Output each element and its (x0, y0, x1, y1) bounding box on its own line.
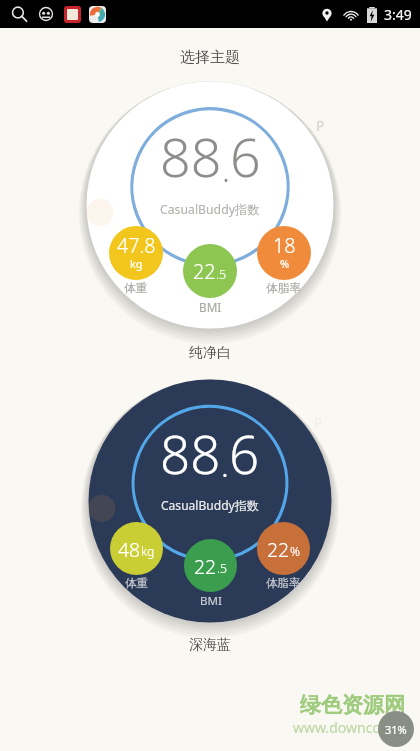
staticText: . (221, 443, 229, 487)
staticText: 22 (194, 553, 217, 579)
staticText: 3:49 (384, 5, 412, 24)
button[interactable]: 18 (257, 226, 311, 280)
staticText: 体重 (125, 576, 149, 591)
staticText: . (222, 147, 230, 191)
button[interactable]: 22 (184, 539, 237, 592)
staticText: 6 (229, 417, 260, 489)
staticText: % (280, 256, 290, 271)
staticText: .5 (216, 266, 227, 283)
staticText: BMI (200, 593, 222, 609)
staticText: 深海蓝 (0, 636, 420, 654)
staticText: CasualBuddy指数 (161, 497, 259, 513)
button[interactable]: 48 (110, 522, 163, 575)
staticText: 体脂率 (266, 281, 302, 296)
staticText: 47.8 (117, 232, 156, 259)
button[interactable]: 22 (257, 522, 310, 575)
staticText: 绿色资源网 (300, 692, 405, 718)
staticText: 选择主题 (0, 48, 420, 67)
staticText: 48 (118, 536, 141, 562)
staticText: 体脂率 (266, 576, 301, 591)
button[interactable]: 88 (87, 378, 333, 624)
staticText: BMI (199, 299, 222, 315)
staticText: 6 (230, 120, 261, 193)
button[interactable]: 88 (85, 80, 335, 330)
staticText: kg (130, 256, 143, 271)
staticText: .5 (217, 560, 228, 577)
staticText: 纯净白 (0, 344, 420, 362)
button[interactable]: 22 (183, 244, 237, 298)
staticText: www.downcc.com (293, 718, 412, 737)
staticText: 22 (193, 258, 216, 285)
staticText: P (314, 414, 323, 432)
staticText: kg (141, 543, 155, 560)
staticText: 88 (160, 417, 221, 489)
staticText: 18 (273, 232, 296, 259)
button[interactable]: 47.8 (109, 226, 163, 280)
staticText: 31% (385, 722, 407, 737)
staticText: % (290, 543, 300, 560)
staticText: P (316, 116, 325, 135)
staticText: 22 (267, 536, 290, 562)
staticText: 88 (160, 120, 222, 193)
staticText: 体重 (124, 281, 148, 296)
staticText: CasualBuddy指数 (160, 201, 260, 218)
